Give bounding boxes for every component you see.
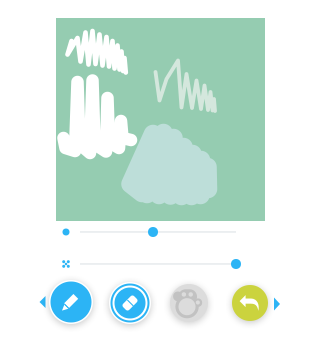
button[interactable]: Previous tools	[36, 292, 50, 312]
button[interactable]: More tools	[270, 294, 284, 314]
button[interactable]: Pencil	[48, 279, 94, 325]
button[interactable]	[56, 254, 246, 274]
button[interactable]: Stamp	[169, 283, 209, 323]
button[interactable]: Eraser	[108, 281, 152, 325]
button[interactable]: Undo	[231, 284, 269, 322]
button[interactable]	[56, 222, 246, 242]
